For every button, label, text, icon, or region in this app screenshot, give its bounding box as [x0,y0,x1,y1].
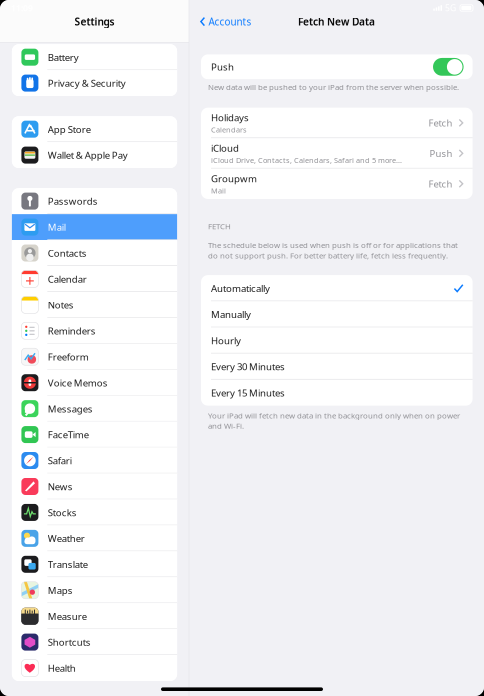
staticText: 5G [445,2,456,14]
staticText: The schedule below is used when push is … [208,240,458,261]
button[interactable]: Accounts [189,8,259,36]
button[interactable]: iCloud [201,138,473,168]
button[interactable]: Freeform [12,344,177,370]
staticText: Calendars [211,125,247,134]
button[interactable]: Push [433,58,464,76]
staticText: Calendar [48,273,87,285]
staticText: Privacy & Security [48,77,126,89]
staticText: News [48,480,73,493]
button[interactable]: Measure [12,603,177,629]
staticText: Messages [48,402,93,415]
button[interactable]: Messages [12,396,177,422]
button[interactable]: Contacts [12,240,177,266]
staticText: Shortcuts [48,636,91,648]
staticText: iCloud Drive, Contacts, Calendars, Safar… [211,155,402,165]
staticText: Measure [48,610,87,622]
staticText: Manually [211,308,251,321]
staticText: New data will be pushed to your iPad fro… [208,82,459,92]
button[interactable]: Wallet & Apple Pay [12,142,177,168]
staticText: Every 15 Minutes [211,386,285,399]
button[interactable]: Manually [201,301,473,327]
staticText: Automatically [211,282,270,294]
button[interactable]: Passwords [12,188,177,214]
button[interactable]: Hourly [201,327,473,353]
button[interactable]: Voice Memos [12,370,177,396]
staticText: Fetch [428,117,452,129]
button[interactable]: Holidays [201,108,473,138]
staticText: Push [211,60,234,73]
staticText: Freeform [48,350,89,363]
button[interactable]: Safari [12,448,177,473]
staticText: Stocks [48,506,77,519]
staticText: Wallet & Apple Pay [48,149,128,161]
staticText: iCloud [211,142,239,154]
staticText: Accounts [208,15,251,28]
button[interactable]: Every 15 Minutes [201,380,473,406]
staticText: Your iPad will fetch new data in the bac… [208,410,460,431]
button[interactable]: Maps [12,577,177,603]
staticText: Contacts [48,247,87,259]
staticText: Holidays [211,111,249,124]
button[interactable]: Mail [12,214,177,240]
staticText: App Store [48,123,91,135]
staticText: Voice Memos [48,376,108,389]
staticText: Hourly [211,334,241,347]
button[interactable]: Notes [12,292,177,318]
staticText: Push [429,147,452,160]
button[interactable]: Privacy & Security [12,70,177,96]
button[interactable]: Health [12,655,177,681]
staticText: Mail [48,221,66,233]
button[interactable]: Automatically [201,275,473,301]
button[interactable]: Translate [12,551,177,577]
button[interactable]: Every 30 Minutes [201,353,473,380]
button[interactable]: Stocks [12,499,177,525]
staticText: Fetch [428,177,452,190]
button[interactable]: Shortcuts [12,629,177,655]
staticText: Weather [48,532,85,545]
staticText: Battery [48,51,79,63]
staticText: Safari [48,454,72,467]
staticText: Health [48,662,76,674]
staticText: Translate [48,558,88,571]
staticText: Every 30 Minutes [211,360,285,373]
button[interactable]: Reminders [12,318,177,344]
button[interactable]: Calendar [12,266,177,292]
button[interactable]: Groupwm [201,169,473,199]
staticText: FETCH [208,221,231,231]
button[interactable]: News [12,473,177,499]
staticText: Groupwm [211,172,257,185]
button[interactable]: App Store [12,116,177,142]
staticText: Fetch New Data [298,15,375,28]
button[interactable]: Battery [12,44,177,70]
button[interactable]: Weather [12,525,177,551]
staticText: Passwords [48,195,98,207]
staticText: Settings [74,15,114,28]
staticText: Mail [211,186,226,195]
staticText: FaceTime [48,428,89,441]
button[interactable]: FaceTime [12,422,177,447]
staticText: Maps [48,584,73,597]
staticText: Reminders [48,324,96,337]
staticText: Notes [48,298,74,311]
